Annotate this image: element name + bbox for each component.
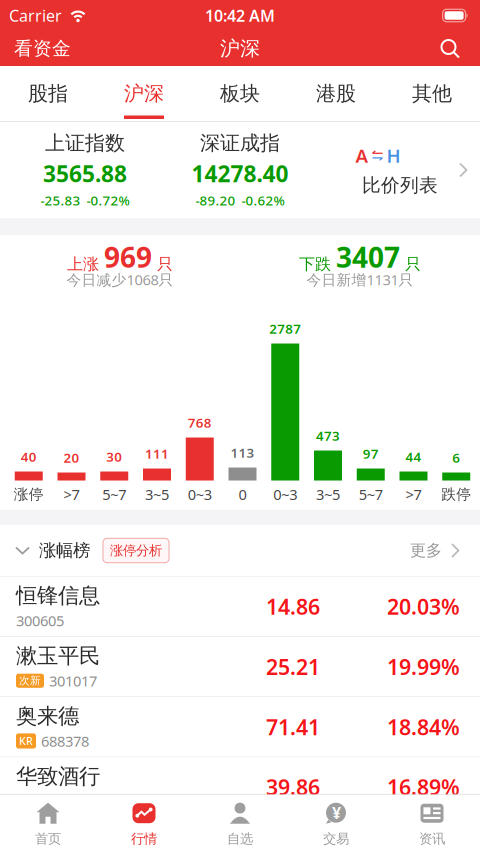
staticText: 0 bbox=[238, 484, 246, 504]
staticText: 上涨 969 只 bbox=[67, 238, 173, 276]
button[interactable]: 奥来德 bbox=[0, 697, 480, 757]
staticText: 18.84% bbox=[387, 713, 460, 741]
button[interactable]: 板块 bbox=[192, 66, 288, 121]
staticText: 2787 bbox=[269, 320, 301, 337]
staticText: 其他 bbox=[412, 81, 452, 106]
button[interactable]: 恒锋信息 bbox=[0, 577, 480, 637]
staticText: 下跌 3407 只 bbox=[299, 238, 421, 276]
staticText: 300605 bbox=[16, 611, 64, 630]
staticText: 5~7 bbox=[359, 484, 383, 504]
button[interactable]: 首页 bbox=[0, 803, 96, 847]
staticText: 300755 bbox=[16, 791, 64, 811]
staticText: 768 bbox=[188, 414, 212, 431]
staticText: 华致酒行 bbox=[16, 763, 100, 789]
staticText: 20 bbox=[63, 449, 79, 466]
staticText: 71.41 bbox=[266, 713, 320, 741]
staticText: >7 bbox=[405, 484, 421, 504]
staticText: >7 bbox=[63, 484, 79, 504]
button[interactable]: ¥ bbox=[288, 803, 384, 847]
staticText: 97 bbox=[363, 445, 379, 462]
staticText: -25.83 -0.72% bbox=[40, 191, 129, 209]
staticText: H bbox=[386, 143, 400, 168]
button[interactable]: 港股 bbox=[288, 66, 384, 121]
button[interactable]: 看资金 bbox=[14, 37, 71, 60]
staticText: 跌停 bbox=[441, 485, 471, 503]
staticText: 比价列表 bbox=[362, 174, 438, 197]
staticText: 上证指数 bbox=[45, 131, 125, 155]
staticText: 0~3 bbox=[273, 484, 297, 504]
staticText: 涨幅榜 bbox=[39, 540, 90, 561]
staticText: 沪深 bbox=[220, 36, 260, 61]
staticText: 看资金 bbox=[14, 37, 71, 60]
button[interactable]: 更多 bbox=[410, 541, 460, 560]
staticText: 10:42 AM bbox=[205, 5, 275, 26]
staticText: 3~5 bbox=[145, 484, 169, 504]
button[interactable]: 华致酒行 bbox=[0, 757, 480, 817]
staticText: 股指 bbox=[28, 81, 68, 106]
button[interactable]: 行情 bbox=[96, 803, 192, 847]
staticText: 涨停 bbox=[14, 485, 44, 503]
staticText: 25.21 bbox=[266, 652, 320, 681]
staticText: 交易 bbox=[323, 831, 349, 847]
staticText: 资讯 bbox=[419, 831, 445, 847]
staticText: 16.89% bbox=[387, 773, 460, 801]
staticText: 473 bbox=[316, 427, 340, 444]
button[interactable]: 涨停分析 bbox=[103, 538, 169, 563]
staticText: 深证成指 bbox=[200, 131, 280, 155]
staticText: 6 bbox=[452, 449, 460, 466]
staticText: 涨停分析 bbox=[110, 542, 162, 559]
staticText: 39.86 bbox=[266, 773, 320, 801]
staticText: 5~7 bbox=[102, 484, 126, 504]
staticText: 今日减少1068只 bbox=[66, 270, 173, 289]
staticText: 自选 bbox=[227, 831, 253, 847]
button[interactable]: 股指 bbox=[0, 66, 96, 121]
staticText: A bbox=[355, 143, 368, 168]
staticText: 恒锋信息 bbox=[16, 583, 100, 609]
button[interactable]: 资讯 bbox=[384, 803, 480, 847]
staticText: 首页 bbox=[35, 831, 61, 847]
staticText: 20.03% bbox=[387, 592, 460, 621]
staticText: 更多 bbox=[410, 541, 442, 560]
staticText: 行情 bbox=[131, 831, 157, 847]
staticText: ¥ bbox=[332, 802, 341, 823]
staticText: 301017 bbox=[49, 671, 97, 690]
staticText: 40 bbox=[21, 448, 37, 465]
staticText: 14278.40 bbox=[191, 158, 288, 188]
staticText: 沪深 bbox=[124, 81, 164, 106]
staticText: Carrier bbox=[9, 5, 62, 26]
staticText: 今日新增1131只 bbox=[306, 270, 413, 289]
button[interactable]: 上证指数 bbox=[5, 131, 165, 209]
staticText: -89.20 -0.62% bbox=[195, 191, 284, 209]
staticText: 漱玉平民 bbox=[16, 643, 100, 669]
staticText: 0~3 bbox=[188, 484, 212, 504]
button[interactable]: 其他 bbox=[384, 66, 480, 121]
staticText: 奥来德 bbox=[16, 703, 79, 729]
staticText: 14.86 bbox=[266, 592, 320, 621]
staticText: 688378 bbox=[41, 731, 89, 751]
button[interactable]: 自选 bbox=[192, 803, 288, 847]
staticText: 111 bbox=[145, 445, 169, 462]
button[interactable]: Search bbox=[440, 38, 466, 58]
staticText: 44 bbox=[405, 448, 421, 465]
button[interactable]: 沪深 bbox=[96, 66, 192, 121]
staticText: 19.99% bbox=[387, 652, 460, 681]
button[interactable]: 涨幅榜 bbox=[15, 540, 90, 561]
button[interactable]: A bbox=[320, 143, 480, 197]
button[interactable]: 漱玉平民 bbox=[0, 637, 480, 697]
staticText: KR bbox=[19, 734, 33, 748]
button[interactable]: 深证成指 bbox=[160, 131, 320, 209]
staticText: 港股 bbox=[316, 81, 356, 106]
staticText: 次新 bbox=[19, 674, 41, 687]
staticText: 113 bbox=[230, 444, 254, 461]
staticText: 3~5 bbox=[316, 484, 340, 504]
staticText: 30 bbox=[106, 448, 122, 465]
staticText: 3565.88 bbox=[43, 158, 127, 188]
staticText: 板块 bbox=[220, 81, 260, 106]
